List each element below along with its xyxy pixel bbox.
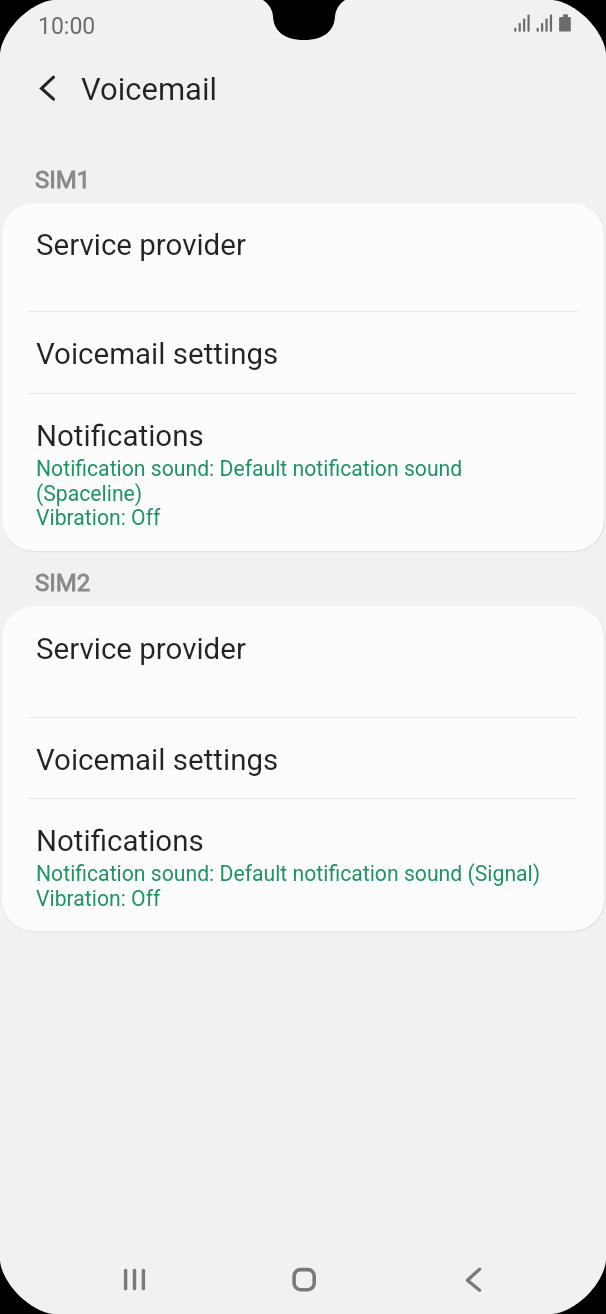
staticText: Vibration: Off [36, 505, 161, 530]
button[interactable]: Service provider [2, 203, 604, 312]
staticText: Voicemail [81, 71, 218, 107]
button[interactable]: Recent apps [101, 1243, 169, 1305]
staticText: Notification sound: Default notification… [36, 456, 463, 481]
staticText: SIM2 [35, 569, 91, 597]
button[interactable]: Service provider [2, 606, 604, 718]
button[interactable]: Voicemail settings [2, 312, 604, 394]
button[interactable]: Home [270, 1243, 338, 1305]
staticText: Service provider [36, 228, 246, 263]
staticText: Notifications [36, 824, 204, 859]
staticText: Service provider [36, 632, 246, 667]
staticText: 10:00 [38, 13, 96, 40]
staticText: Vibration: Off [36, 886, 161, 911]
button[interactable]: Back [439, 1243, 507, 1305]
staticText: Notifications [36, 419, 204, 454]
staticText: Voicemail settings [36, 337, 279, 372]
staticText: SIM1 [35, 166, 91, 194]
button[interactable]: Voicemail settings [2, 718, 604, 799]
staticText: Notification sound: Default notification… [36, 861, 541, 886]
staticText: Voicemail settings [36, 743, 279, 778]
staticText: (Spaceline) [36, 481, 143, 506]
button[interactable]: Navigate up [12, 60, 80, 116]
button[interactable]: Notifications [2, 394, 604, 551]
button[interactable]: Notifications [2, 799, 604, 931]
